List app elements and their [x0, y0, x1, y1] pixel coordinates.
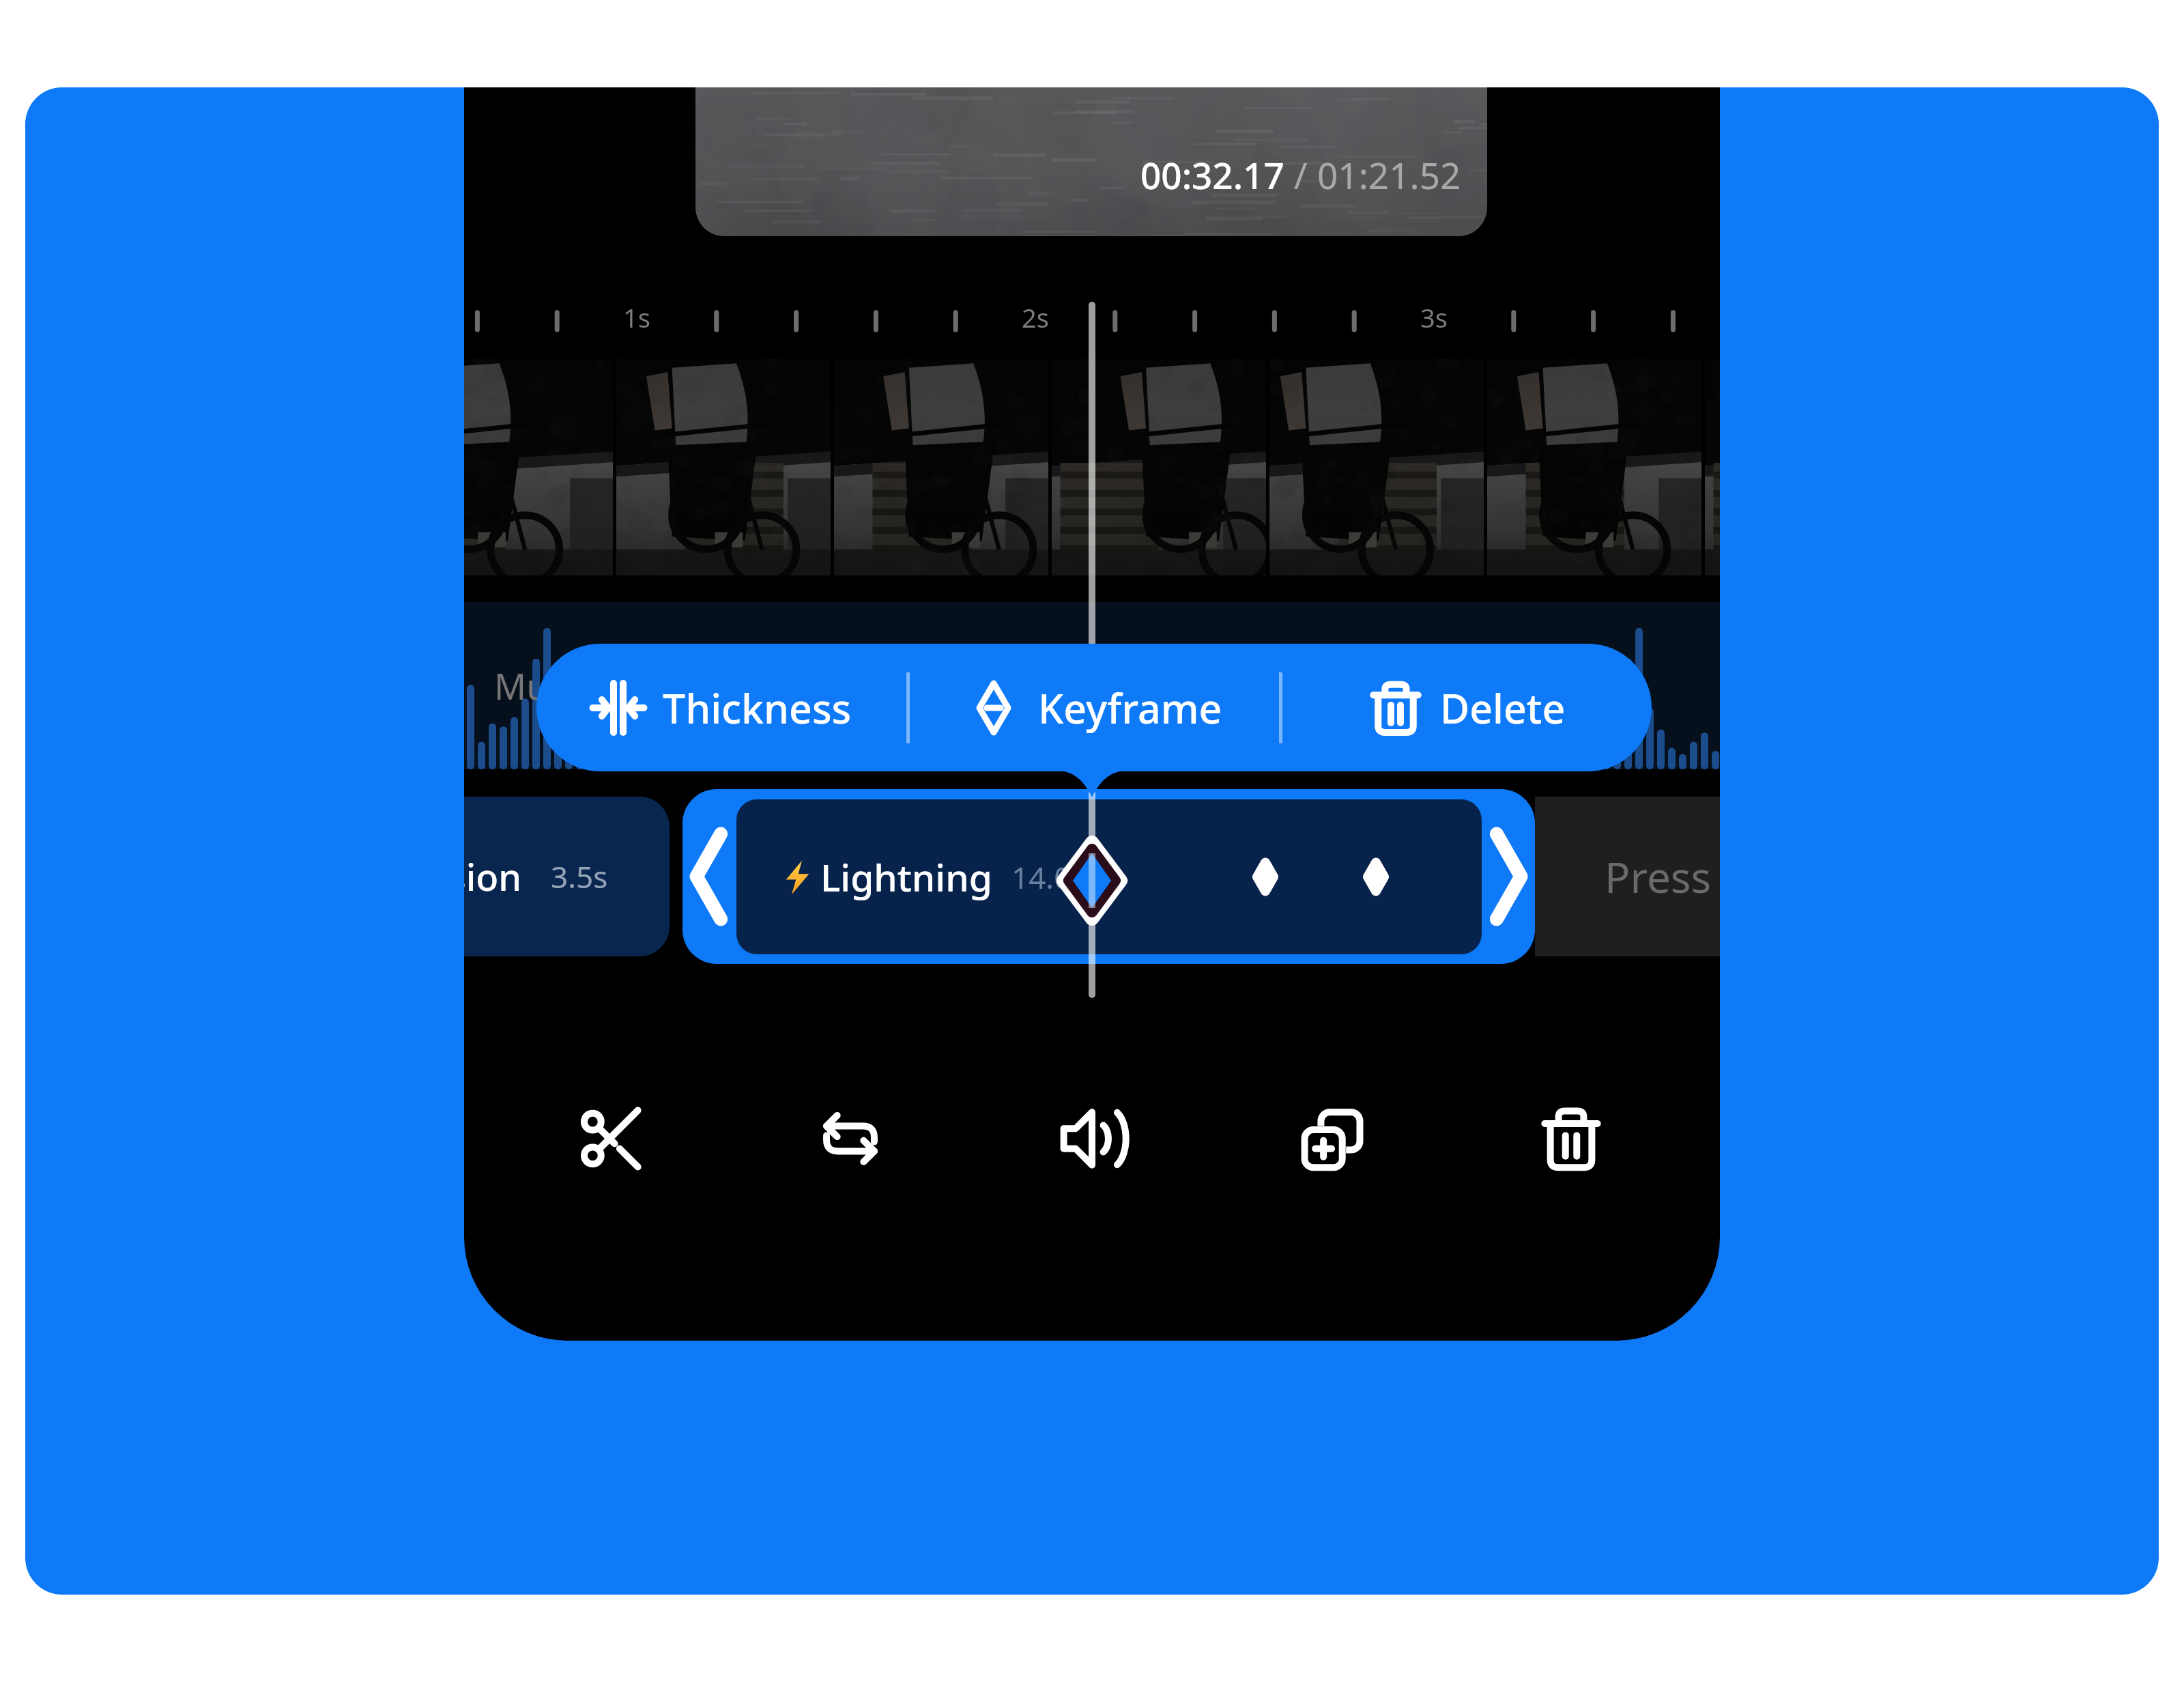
button[interactable]: Duplicate — [1261, 1070, 1404, 1207]
button[interactable]: Keyframe — [910, 644, 1279, 771]
button[interactable]: Split — [539, 1070, 682, 1207]
staticText: Press — [1605, 848, 1712, 905]
staticText: 3s — [1393, 300, 1475, 335]
staticText: 14.0s — [1011, 857, 1086, 898]
button[interactable]: Explosion — [464, 797, 670, 956]
button[interactable]: Video track — [464, 359, 1720, 575]
staticText: 3.5s — [551, 856, 608, 897]
button[interactable]: Music — [464, 602, 1720, 769]
button[interactable]: Press — [1535, 797, 1720, 956]
staticText: 00:32.17 — [1140, 150, 1284, 199]
button[interactable]: Lightning — [682, 789, 1535, 964]
staticText: 01:21.52 — [1317, 150, 1461, 199]
staticText: Thickness — [663, 681, 852, 735]
staticText: Keyframe — [1038, 681, 1222, 735]
button[interactable]: Delete — [1282, 644, 1652, 771]
staticText: Lightning — [820, 851, 992, 902]
button[interactable]: Delete — [1499, 1070, 1643, 1207]
staticText: 2s — [994, 300, 1076, 335]
button[interactable]: Video preview — [695, 87, 1487, 236]
staticText: 1s — [596, 300, 678, 335]
button[interactable]: Replace — [779, 1070, 922, 1207]
button[interactable]: Volume — [1020, 1070, 1164, 1207]
staticText: Delete — [1440, 681, 1566, 735]
staticText: Explosion — [464, 851, 522, 902]
staticText: Music — [494, 661, 592, 710]
staticText: / — [1284, 150, 1317, 199]
button[interactable]: Thickness — [536, 644, 906, 771]
